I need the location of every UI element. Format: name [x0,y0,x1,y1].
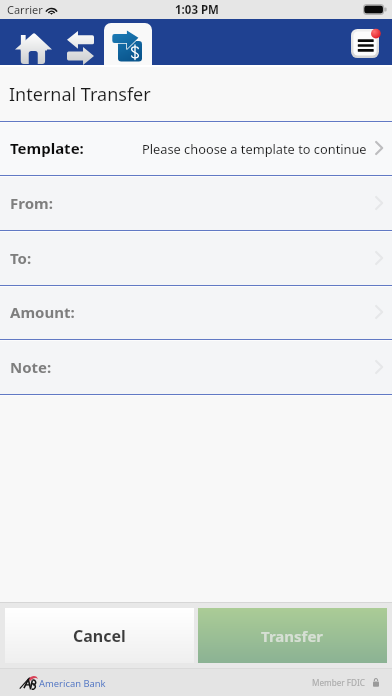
staticText: To: [10,248,32,268]
button[interactable]: Cancel [5,608,194,663]
staticText: Carrier [7,2,43,17]
button[interactable]: Menu [344,19,388,65]
staticText: Transfer [261,626,324,646]
staticText: Internal Transfer [9,82,151,107]
button[interactable]: Home [10,19,58,65]
button[interactable]: Internal Transfer tab [104,19,152,65]
button[interactable]: To: [0,230,392,285]
button[interactable]: Template: [0,121,392,175]
staticText: Member FDIC [312,677,366,688]
staticText: Amount: [10,302,75,322]
button[interactable]: From: [0,175,392,230]
staticText: Note: [10,357,52,377]
staticText: From: [10,193,53,213]
staticText: American Bank [39,677,106,690]
staticText: Template: [10,138,84,158]
button[interactable]: Amount: [0,285,392,339]
button[interactable]: Transfers [58,19,102,65]
button[interactable]: Transfer [198,608,387,663]
button[interactable]: Note: [0,339,392,394]
staticText: 1:03 PM [175,2,219,18]
staticText: Cancel [73,625,126,647]
staticText: Please choose a template to continue [142,140,367,157]
